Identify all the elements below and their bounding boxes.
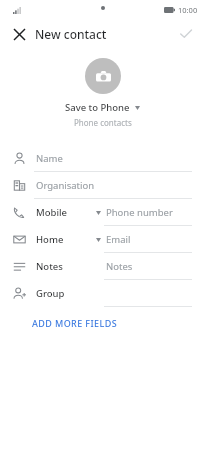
staticText: Phone number (106, 206, 173, 219)
staticText: 10:00 (178, 5, 198, 15)
staticText: Phone contacts (74, 117, 132, 128)
staticText: Group (36, 287, 65, 300)
button[interactable]: Add photo (85, 58, 121, 94)
staticText: New contact (35, 26, 107, 42)
staticText: Organisation (36, 179, 95, 192)
staticText: Home (36, 233, 64, 246)
button[interactable]: Save to Phone (65, 101, 140, 114)
button[interactable]: Group (0, 280, 205, 307)
button[interactable]: Organisation (0, 172, 205, 199)
button[interactable]: Home (0, 226, 205, 253)
staticText: Name (36, 152, 63, 165)
staticText: Notes (106, 260, 133, 273)
button[interactable]: Save (174, 22, 198, 46)
button[interactable]: Close (7, 22, 31, 46)
button[interactable]: Notes (0, 253, 205, 280)
staticText: ADD MORE FIELDS (32, 317, 118, 329)
button[interactable]: ADD MORE FIELDS (29, 313, 121, 333)
button[interactable]: Name (0, 145, 205, 172)
staticText: Save to Phone (65, 101, 130, 114)
staticText: Mobile (36, 206, 67, 219)
staticText: Notes (36, 260, 63, 273)
staticText: Email (106, 233, 131, 246)
button[interactable]: Mobile (0, 199, 205, 226)
